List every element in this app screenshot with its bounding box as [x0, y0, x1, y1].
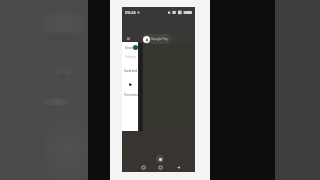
button[interactable]: Open navigation drawer: [124, 34, 132, 42]
button[interactable]: Back: [174, 163, 182, 171]
button[interactable]: Social mail: [122, 68, 138, 74]
button[interactable]: Labels: [127, 81, 133, 87]
staticText: 09:24: [125, 10, 136, 16]
staticText: Social mail: [124, 69, 138, 73]
button[interactable]: Assistant: [156, 155, 164, 163]
button[interactable]: Google Pay b: [142, 34, 172, 44]
staticText: Promotions: [124, 93, 138, 97]
staticText: Primary: [125, 55, 136, 59]
button[interactable]: Recents: [139, 163, 147, 171]
staticText: Gmail: [125, 46, 133, 50]
button[interactable]: Gmail: [122, 44, 138, 51]
button[interactable]: Primary: [122, 54, 138, 60]
button[interactable]: Home: [156, 163, 164, 171]
button[interactable]: Promotions: [122, 92, 138, 98]
staticText: Google Pay b: [151, 37, 170, 41]
